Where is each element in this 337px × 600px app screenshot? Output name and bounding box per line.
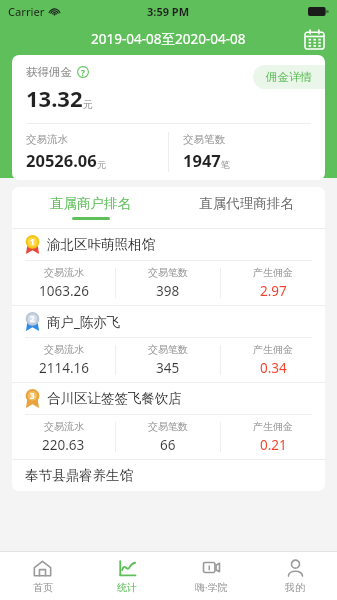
- staticText: 交易笔数: [148, 266, 188, 279]
- staticText: 获得佣金: [26, 65, 72, 79]
- button[interactable]: 2: [12, 306, 325, 383]
- staticText: 产生佣金: [253, 266, 293, 279]
- staticText: 嗨·学院: [195, 580, 228, 594]
- staticText: 直属代理商排名: [199, 195, 294, 212]
- staticText: 13.32: [26, 83, 83, 113]
- staticText: 2114.16: [39, 359, 89, 377]
- staticText: 220.63: [42, 436, 85, 454]
- staticText: 2: [30, 313, 35, 324]
- button[interactable]: 奉节县鼎睿养生馆: [12, 460, 325, 491]
- staticText: ?: [81, 67, 85, 78]
- button[interactable]: 嗨·学院: [169, 552, 253, 600]
- staticText: 交易笔数: [183, 133, 225, 146]
- button[interactable]: Commission help: [77, 66, 89, 78]
- button[interactable]: Select date range: [301, 26, 327, 52]
- staticText: 2019-04-08至2020-04-08: [91, 30, 246, 48]
- staticText: 1: [30, 236, 35, 247]
- staticText: 交易流水: [44, 343, 84, 356]
- button[interactable]: 1: [12, 229, 325, 306]
- staticText: 0.34: [260, 359, 287, 377]
- staticText: 元: [97, 159, 106, 170]
- staticText: 345: [156, 359, 180, 377]
- staticText: 元: [83, 98, 93, 111]
- button[interactable]: 直属代理商排名: [168, 187, 325, 228]
- staticText: 3: [30, 390, 35, 401]
- staticText: 首页: [33, 581, 53, 594]
- staticText: 奉节县鼎睿养生馆: [25, 467, 133, 484]
- staticText: 交易笔数: [148, 420, 188, 433]
- staticText: 2.97: [260, 282, 287, 300]
- staticText: 统计: [117, 581, 137, 594]
- button[interactable]: 佣金详情: [253, 65, 325, 89]
- staticText: 交易流水: [44, 420, 84, 433]
- staticText: 20526.06: [26, 149, 97, 171]
- button[interactable]: 3: [12, 383, 325, 460]
- staticText: 1947: [183, 149, 221, 171]
- staticText: 交易流水: [44, 266, 84, 279]
- button[interactable]: 统计: [85, 552, 169, 600]
- staticText: 佣金详情: [266, 70, 312, 84]
- staticText: 合川区让签签飞餐饮店: [47, 390, 182, 407]
- button[interactable]: 我的: [253, 552, 337, 600]
- staticText: 笔: [221, 159, 230, 170]
- staticText: 直属商户排名: [50, 195, 131, 212]
- staticText: 渝北区咔萌照相馆: [47, 236, 155, 253]
- staticText: 商户_陈亦飞: [47, 313, 121, 331]
- staticText: 0.21: [260, 436, 287, 454]
- staticText: 66: [160, 436, 176, 454]
- button[interactable]: 首页: [0, 552, 85, 600]
- staticText: 398: [156, 282, 180, 300]
- staticText: 产生佣金: [253, 420, 293, 433]
- staticText: 产生佣金: [253, 343, 293, 356]
- staticText: 3:59 PM: [147, 4, 190, 19]
- staticText: 1063.26: [39, 282, 89, 300]
- staticText: 交易笔数: [148, 343, 188, 356]
- staticText: 交易流水: [26, 133, 68, 146]
- button[interactable]: 直属商户排名: [12, 187, 168, 228]
- staticText: 我的: [285, 581, 305, 594]
- staticText: Carrier: [8, 4, 45, 19]
